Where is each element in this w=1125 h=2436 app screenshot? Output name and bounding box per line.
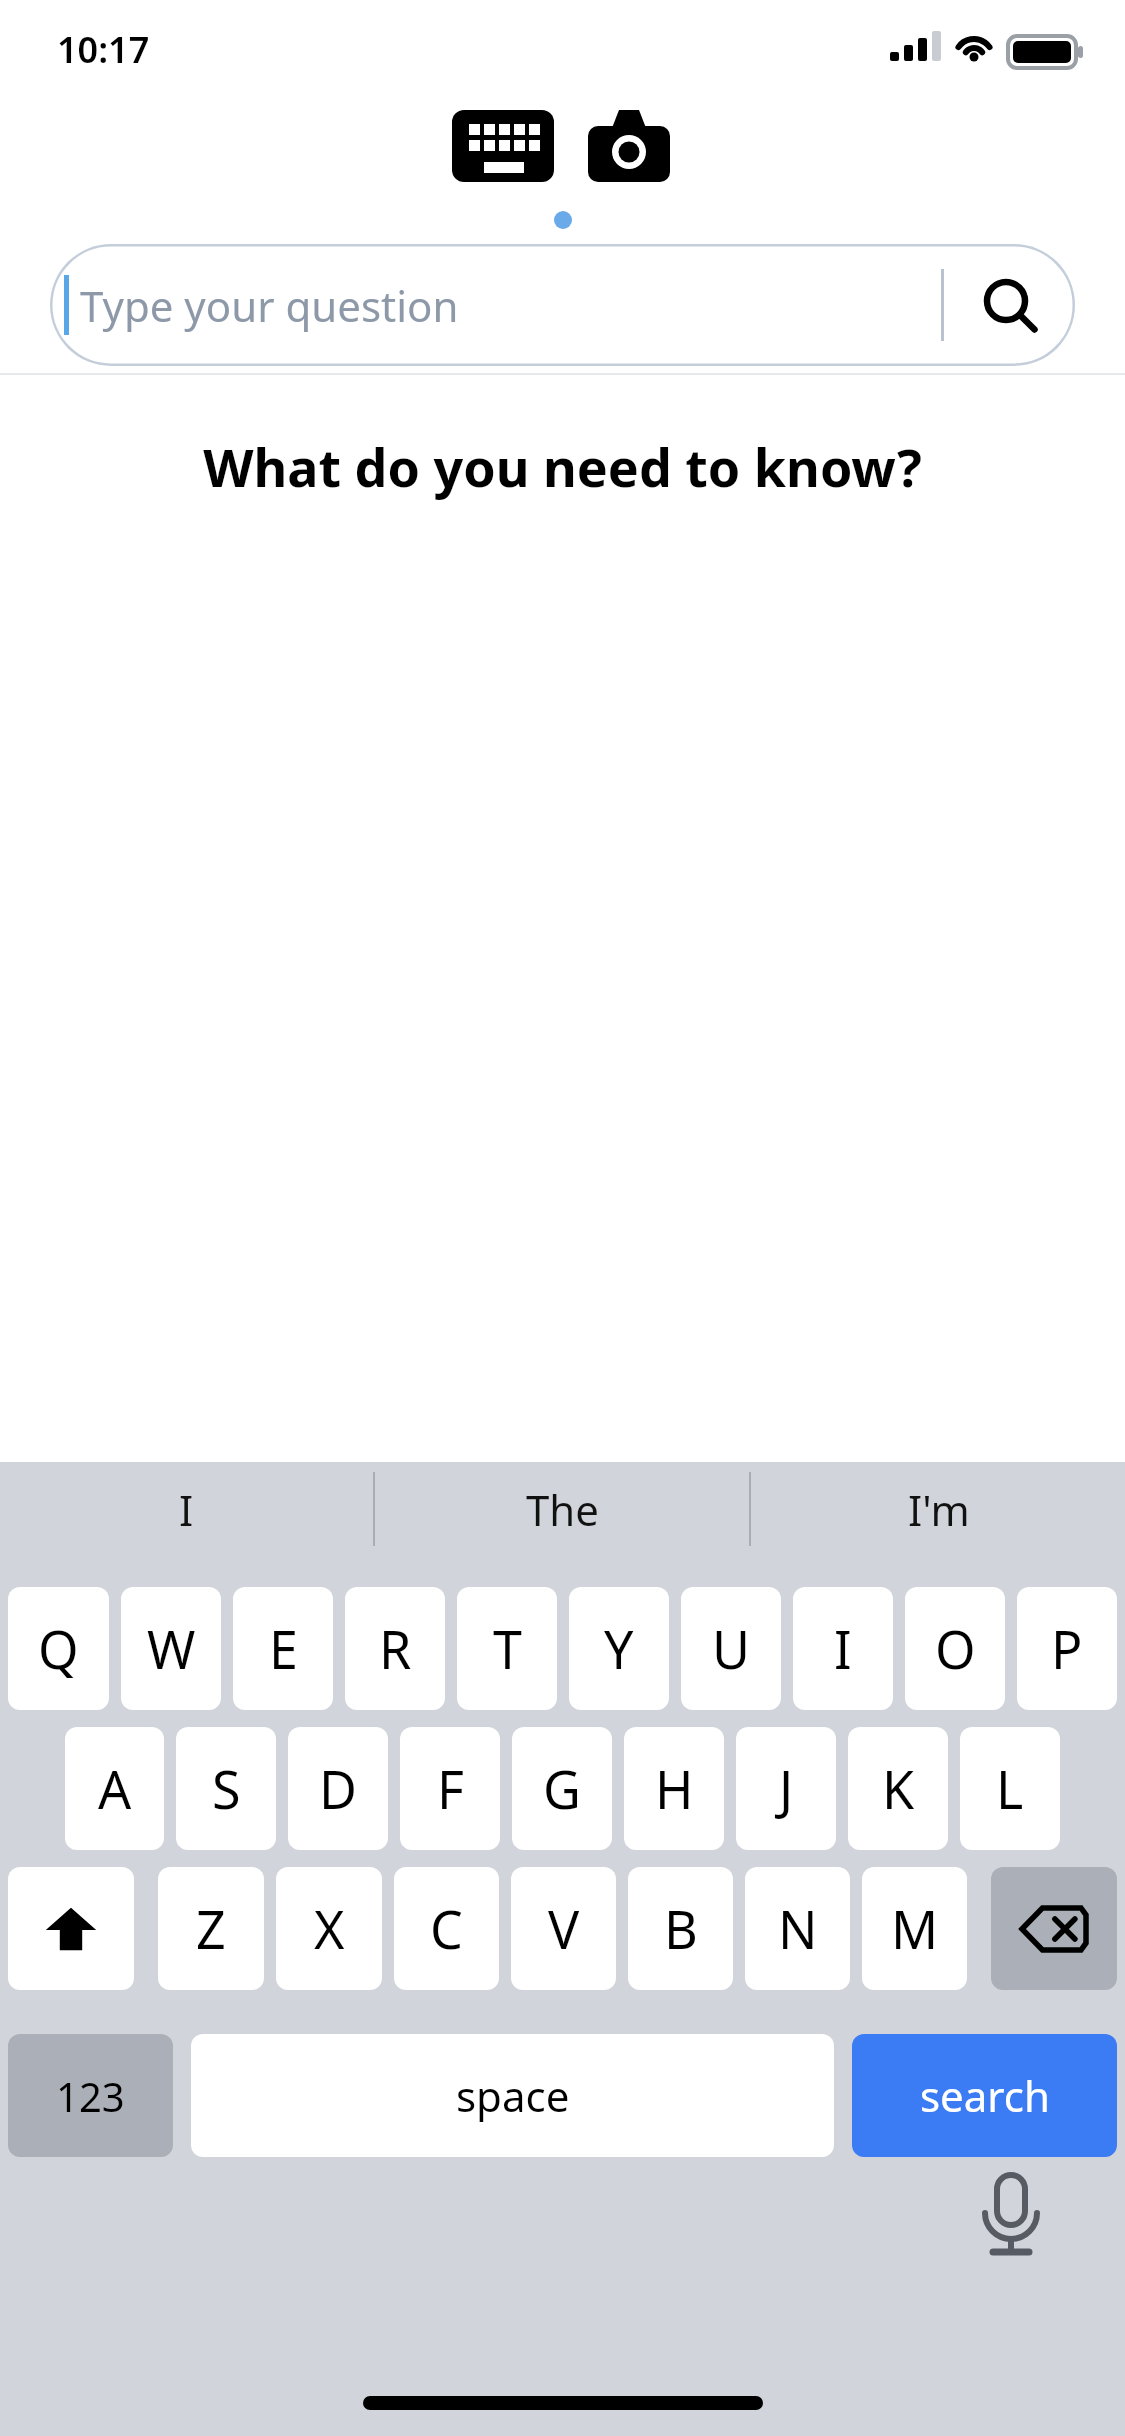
staticText: R [379, 1613, 412, 1684]
staticText: 10:17 [57, 25, 150, 74]
button[interactable]: B [628, 1867, 733, 1990]
staticText: J [779, 1753, 794, 1824]
button[interactable]: S [176, 1727, 276, 1850]
staticText: Y [604, 1613, 634, 1684]
button[interactable]: search [852, 2034, 1117, 2157]
button[interactable]: K [848, 1727, 948, 1850]
button[interactable]: R [345, 1587, 445, 1710]
button[interactable]: H [624, 1727, 724, 1850]
button[interactable]: 123 [8, 2034, 173, 2157]
button[interactable]: Camera search [579, 104, 679, 188]
button[interactable]: I [793, 1587, 893, 1710]
button[interactable]: J [736, 1727, 836, 1850]
button[interactable]: Search [945, 244, 1075, 366]
button[interactable]: T [457, 1587, 557, 1710]
button[interactable]: F [400, 1727, 500, 1850]
button[interactable]: Z [158, 1867, 264, 1990]
staticText: What do you need to know? [203, 431, 922, 502]
button[interactable]: The [376, 1462, 749, 1556]
button[interactable]: space [191, 2034, 834, 2157]
staticText: Type your question [80, 277, 459, 334]
staticText: T [493, 1613, 522, 1684]
button[interactable]: O [905, 1587, 1005, 1710]
button[interactable]: E [233, 1587, 333, 1710]
staticText: I [834, 1613, 852, 1684]
staticText: space [456, 2067, 570, 2124]
staticText: M [891, 1893, 939, 1964]
button[interactable]: Type your question [50, 244, 1075, 366]
staticText: I'm [908, 1481, 970, 1538]
button[interactable]: Y [569, 1587, 669, 1710]
staticText: O [935, 1613, 976, 1684]
staticText: H [655, 1753, 694, 1824]
staticText: B [664, 1893, 698, 1964]
button[interactable]: Keyboard input [447, 104, 559, 188]
button[interactable]: U [681, 1587, 781, 1710]
button[interactable]: Shift [8, 1867, 134, 1990]
button[interactable]: W [121, 1587, 221, 1710]
button[interactable]: L [960, 1727, 1060, 1850]
staticText: S [212, 1753, 241, 1824]
staticText: U [712, 1613, 751, 1684]
staticText: G [543, 1753, 581, 1824]
button[interactable]: M [862, 1867, 967, 1990]
button[interactable]: X [276, 1867, 382, 1990]
button[interactable]: A [65, 1727, 164, 1850]
button[interactable]: I [0, 1462, 373, 1556]
button[interactable]: I'm [752, 1462, 1125, 1556]
staticText: C [430, 1893, 463, 1964]
staticText: 123 [56, 2069, 125, 2123]
button[interactable]: N [745, 1867, 850, 1990]
button[interactable]: G [512, 1727, 612, 1850]
staticText: D [319, 1753, 357, 1824]
staticText: E [269, 1613, 298, 1684]
staticText: search [920, 2067, 1050, 2124]
button[interactable]: Dictate [963, 2167, 1059, 2263]
staticText: I [179, 1481, 194, 1538]
staticText: Z [196, 1893, 226, 1964]
staticText: F [437, 1753, 464, 1824]
staticText: P [1051, 1613, 1083, 1684]
button[interactable]: V [511, 1867, 616, 1990]
button[interactable]: Backspace [991, 1867, 1117, 1990]
staticText: K [882, 1753, 915, 1824]
staticText: V [548, 1893, 580, 1964]
staticText: X [314, 1893, 345, 1964]
staticText: N [778, 1893, 818, 1964]
staticText: A [98, 1753, 132, 1824]
staticText: L [996, 1753, 1024, 1824]
button[interactable]: D [288, 1727, 388, 1850]
button[interactable]: C [394, 1867, 499, 1990]
staticText: The [526, 1481, 599, 1538]
button[interactable]: P [1017, 1587, 1117, 1710]
staticText: W [147, 1613, 196, 1684]
staticText: Q [38, 1613, 79, 1684]
button[interactable]: Q [8, 1587, 109, 1710]
